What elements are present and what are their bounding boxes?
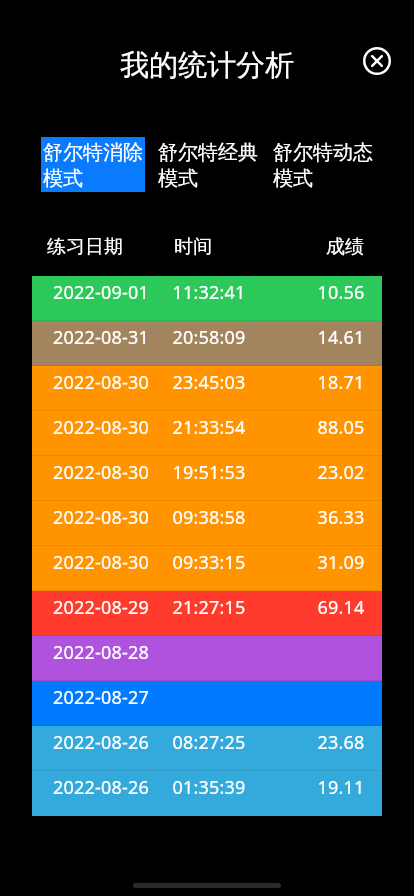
button[interactable]: 舒尔特动态 模式	[271, 137, 375, 192]
button[interactable]: 2022-08-30	[32, 456, 382, 501]
staticText: 时间	[174, 235, 212, 259]
staticText: 11:32:41	[172, 280, 246, 305]
staticText: 20:58:09	[172, 325, 246, 350]
staticText: 21:27:15	[172, 595, 246, 620]
button[interactable]: 2022-08-31	[32, 321, 382, 366]
staticText: 18.71	[317, 370, 365, 395]
staticText: 2022-08-26	[53, 775, 149, 800]
staticText: 08:27:25	[172, 730, 246, 755]
staticText: 01:35:39	[172, 775, 246, 800]
button[interactable]: 2022-08-30	[32, 501, 382, 546]
staticText: 2022-08-30	[53, 460, 149, 485]
staticText: 23:45:03	[172, 370, 246, 395]
button[interactable]: 2022-08-30	[32, 546, 382, 591]
staticText: 23.02	[317, 460, 365, 485]
staticText: 19:51:53	[172, 460, 246, 485]
staticText: 2022-08-31	[53, 325, 149, 350]
staticText: 21:33:54	[172, 415, 246, 440]
staticText: 10.56	[317, 280, 365, 305]
button[interactable]: 2022-08-30	[32, 411, 382, 456]
staticText: 舒尔特动态 模式	[273, 140, 373, 191]
button[interactable]: 2022-08-27	[32, 681, 382, 726]
staticText: 2022-08-30	[53, 550, 149, 575]
button[interactable]: 舒尔特经典 模式	[156, 137, 260, 192]
staticText: 2022-08-28	[53, 640, 149, 665]
staticText: 09:33:15	[172, 550, 246, 575]
button[interactable]: 舒尔特消除 模式	[41, 137, 145, 192]
staticText: 我的统计分析	[120, 47, 294, 84]
staticText: 88.05	[317, 415, 365, 440]
staticText: 31.09	[317, 550, 365, 575]
staticText: 2022-08-29	[53, 595, 149, 620]
staticText: 14.61	[317, 325, 365, 350]
button[interactable]: 2022-08-29	[32, 591, 382, 636]
staticText: 2022-08-27	[53, 685, 149, 710]
staticText: 69.14	[317, 595, 365, 620]
staticText: 2022-09-01	[53, 280, 149, 305]
staticText: 2022-08-30	[53, 505, 149, 530]
button[interactable]: 2022-08-28	[32, 636, 382, 681]
staticText: 2022-08-26	[53, 730, 149, 755]
staticText: 36.33	[317, 505, 365, 530]
staticText: 舒尔特经典 模式	[158, 140, 258, 191]
staticText: 2022-08-30	[53, 370, 149, 395]
button[interactable]: 2022-08-30	[32, 366, 382, 411]
staticText: 09:38:58	[172, 505, 246, 530]
staticText: 2022-08-30	[53, 415, 149, 440]
staticText: 19.11	[317, 775, 365, 800]
staticText: 23.68	[317, 730, 365, 755]
staticText: 舒尔特消除 模式	[43, 140, 143, 191]
button[interactable]: 2022-08-26	[32, 726, 382, 771]
button[interactable]: 2022-08-26	[32, 771, 382, 816]
button[interactable]: Close	[355, 39, 399, 83]
button[interactable]: 2022-09-01	[32, 276, 382, 321]
staticText: 成绩	[326, 235, 364, 259]
staticText: 练习日期	[47, 235, 123, 259]
